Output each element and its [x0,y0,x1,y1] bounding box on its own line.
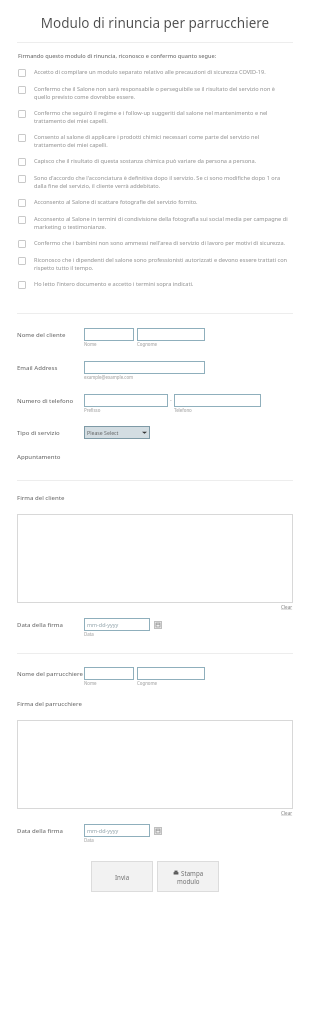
button[interactable]: Acconsento al Salone di scattare fotogra… [0,195,310,210]
button[interactable]: Ho letto l'intero documento e accetto i … [0,277,310,292]
button[interactable]: Confermo che il Salone non sarà responsa… [0,82,310,104]
staticText: example@example.com [84,374,134,380]
button[interactable]: Area firma [17,514,293,603]
button[interactable]: Please Select [84,426,150,439]
staticText: Appuntamento [17,453,61,461]
button[interactable]: Scegli data [154,827,162,835]
staticText: Data [84,631,94,637]
button[interactable]: Scegli data [154,621,162,629]
staticText: Firmando questo modulo di rinuncia, rico… [18,52,217,60]
button[interactable] [84,667,134,680]
staticText: Stampa [181,869,204,877]
button[interactable]: Acconsento al Salone in termini di condi… [0,212,310,234]
staticText: Cognome [137,341,158,347]
button[interactable] [137,667,205,680]
staticText: Clear [281,810,293,816]
staticText: Clear [281,604,293,610]
staticText: Riconosco che i dipendenti del salone so… [34,256,292,272]
staticText: Consento al salone di applicare i prodot… [34,133,292,149]
button[interactable] [137,328,205,341]
staticText: Ho letto l'intero documento e accetto i … [34,280,194,288]
staticText: Data [84,837,94,843]
staticText: Please Select [87,429,119,436]
staticText: Tipo di servizio [17,429,60,437]
staticText: Email Address [17,364,58,372]
staticText: Nome [84,341,97,347]
staticText: Nome [84,680,97,686]
staticText: Modulo di rinuncia per parrucchiere [0,14,310,32]
button[interactable]: Accetto di compilare un modulo separato … [0,65,310,80]
button[interactable]: Confermo che seguirò il regime e i follo… [0,106,310,128]
button[interactable]: Clear [281,809,293,816]
staticText: Invia [115,873,130,881]
staticText: Nome del parrucchiere [17,670,83,678]
button[interactable]: mm-dd-yyyy [84,618,150,631]
button[interactable]: Area firma [17,720,293,809]
staticText: Prefisso [84,407,101,413]
button[interactable] [174,394,261,407]
button[interactable]: Sono d'accordo che l'acconciatura è defi… [0,171,310,193]
button[interactable] [84,394,168,407]
staticText: Data della firma [17,621,63,629]
staticText: modulo [177,877,200,885]
button[interactable]: Consento al salone di applicare i prodot… [0,130,310,152]
staticText: Acconsento al Salone di scattare fotogra… [34,198,198,206]
button[interactable]: Capisco che il risultato di questa sosta… [0,154,310,169]
staticText: Telefono [174,407,192,413]
button[interactable] [84,361,205,374]
staticText: - [170,397,172,404]
staticText: Cognome [137,680,158,686]
button[interactable]: mm-dd-yyyy [84,824,150,837]
staticText: Nome del cliente [17,331,66,339]
staticText: Sono d'accordo che l'acconciatura è defi… [34,174,292,190]
button[interactable]: Stampa [157,861,219,892]
staticText: Data della firma [17,827,63,835]
staticText: Accetto di compilare un modulo separato … [34,68,266,76]
button[interactable] [84,328,134,341]
button[interactable]: Riconosco che i dipendenti del salone so… [0,253,310,275]
staticText: Firma del cliente [17,494,65,502]
button[interactable]: Confermo che i bambini non sono ammessi … [0,236,310,251]
staticText: mm-dd-yyyy [87,827,119,834]
staticText: Confermo che seguirò il regime e i follo… [34,109,292,125]
staticText: Confermo che i bambini non sono ammessi … [34,239,286,247]
staticText: Acconsento al Salone in termini di condi… [34,215,292,231]
button[interactable]: Clear [281,603,293,610]
staticText: Confermo che il Salone non sarà responsa… [34,85,292,101]
button[interactable]: Invia [91,861,153,892]
staticText: Numero di telefono [17,397,74,405]
staticText: Capisco che il risultato di questa sosta… [34,157,257,165]
staticText: mm-dd-yyyy [87,621,119,628]
staticText: Firma del parrucchiere [17,700,82,708]
